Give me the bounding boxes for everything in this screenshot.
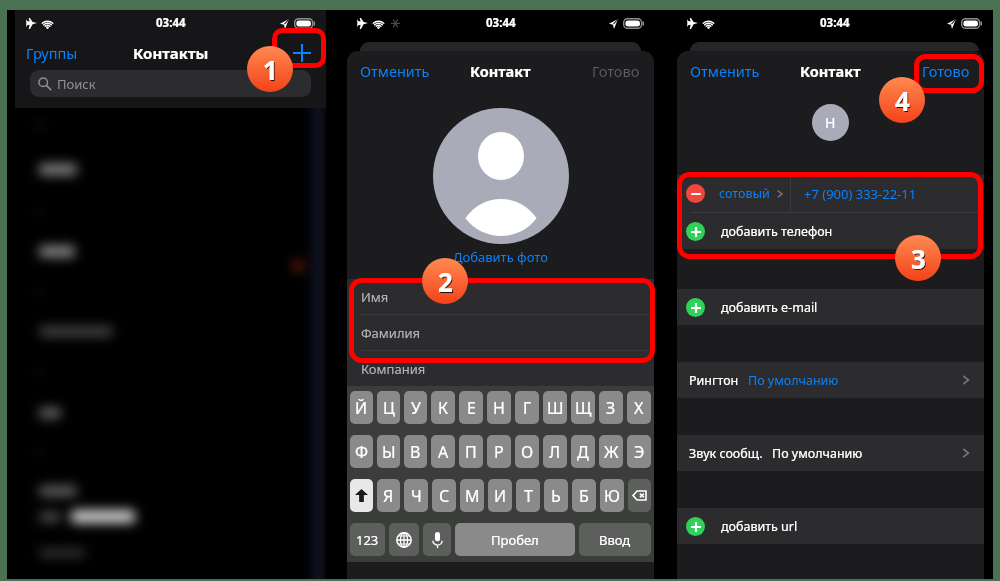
button[interactable]: Ж [599, 435, 623, 468]
button[interactable]: Ц [377, 391, 400, 424]
staticText: добавить e-mail [721, 299, 818, 316]
button[interactable]: Готово [592, 61, 640, 81]
staticText: Д [577, 441, 589, 463]
staticText: Отменить [360, 61, 430, 81]
button[interactable]: Х [627, 391, 651, 424]
staticText: М [465, 485, 480, 507]
staticText: Л [549, 441, 561, 463]
button[interactable]: Т [516, 479, 540, 512]
button[interactable]: И [488, 479, 512, 512]
button[interactable]: Shift [350, 479, 373, 512]
staticText: Ю [604, 485, 620, 507]
staticText: 123 [356, 531, 379, 549]
staticText: Ж [604, 441, 619, 463]
staticText: К [438, 397, 449, 419]
staticText: У [411, 397, 421, 419]
button[interactable]: Поиск [30, 70, 311, 97]
button[interactable]: О [515, 435, 539, 468]
other: Add [686, 517, 705, 536]
button[interactable]: Э [627, 435, 651, 468]
staticText: Ф [355, 441, 369, 463]
button[interactable]: Д [571, 435, 595, 468]
staticText: +7 (900) 333-22-11 [804, 185, 917, 203]
button[interactable]: Готово [922, 61, 970, 81]
staticText: 1 [263, 52, 278, 87]
button[interactable]: В [404, 435, 427, 468]
button[interactable]: Р [487, 435, 511, 468]
staticText: В [410, 441, 421, 463]
staticText: Контакт [800, 61, 861, 81]
button[interactable]: Группы [26, 43, 78, 63]
button[interactable]: Щ [571, 391, 595, 424]
button[interactable]: Ф [350, 435, 373, 468]
staticText: добавить телефон [721, 223, 833, 240]
staticText: Ц [383, 397, 395, 419]
button[interactable]: Г [515, 391, 539, 424]
button[interactable]: Л [543, 435, 567, 468]
button[interactable]: Ввод [579, 523, 651, 556]
staticText: добавить url [721, 518, 798, 535]
button[interactable]: Add [677, 213, 984, 249]
staticText: Контакты [133, 43, 209, 63]
staticText: И [494, 485, 507, 507]
button[interactable]: Е [459, 391, 483, 424]
button[interactable]: П [459, 435, 483, 468]
staticText: Добавить фото [453, 248, 548, 266]
staticText: Поиск [57, 75, 96, 93]
staticText: По умолчанию [748, 372, 839, 389]
button[interactable]: Пробел [455, 523, 575, 556]
button[interactable]: 123 [350, 523, 385, 556]
button[interactable]: Й [350, 391, 373, 424]
button[interactable]: Change keyboard [389, 523, 419, 556]
staticText: сотовый [719, 185, 770, 202]
button[interactable]: Dictate [423, 523, 451, 556]
staticText: Ш [547, 397, 564, 419]
staticText: Э [634, 441, 645, 463]
button[interactable]: М [460, 479, 484, 512]
staticText: Б [579, 485, 589, 507]
button[interactable]: Ы [377, 435, 400, 468]
staticText: Группы [26, 43, 78, 63]
button[interactable]: Add [677, 508, 984, 544]
button[interactable]: Отменить [690, 61, 760, 81]
button[interactable]: Backspace [628, 479, 651, 512]
staticText: Ввод [599, 531, 631, 549]
other: Add [686, 298, 705, 317]
button[interactable]: Имя [347, 279, 654, 314]
button[interactable]: Звук сообщ. [677, 435, 984, 471]
button[interactable]: Н [487, 391, 511, 424]
button[interactable]: Ш [543, 391, 567, 424]
staticText: Отменить [690, 61, 760, 81]
button[interactable]: Добавить фото [347, 247, 654, 267]
staticText: Й [355, 397, 368, 419]
staticText: Рингтон [689, 372, 739, 389]
staticText: По умолчанию [772, 445, 863, 462]
staticText: Г [523, 397, 532, 419]
button[interactable]: Add [677, 289, 984, 325]
button[interactable]: З [599, 391, 623, 424]
button[interactable]: С [432, 479, 456, 512]
button[interactable]: Ь [544, 479, 568, 512]
staticText: 4 [896, 84, 911, 119]
button[interactable]: Рингтон [677, 362, 984, 398]
button[interactable]: Remove [686, 184, 705, 203]
staticText: А [438, 441, 449, 463]
button[interactable]: К [431, 391, 455, 424]
button[interactable]: Remove [677, 175, 984, 212]
button[interactable]: А [431, 435, 455, 468]
button[interactable]: Фамилия [347, 315, 654, 350]
button[interactable]: Отменить [360, 61, 430, 81]
button[interactable]: Б [572, 479, 596, 512]
staticText: Контакт [470, 61, 531, 81]
staticText: Е [467, 397, 476, 419]
staticText: Имя [361, 288, 389, 306]
button[interactable]: У [404, 391, 427, 424]
button[interactable]: Add contact [288, 39, 316, 67]
staticText: Готово [922, 61, 970, 81]
button[interactable]: Я [377, 479, 400, 512]
staticText: Щ [575, 397, 592, 419]
button[interactable]: Компания [347, 351, 654, 386]
button[interactable]: Ю [600, 479, 624, 512]
staticText: 4 [895, 83, 910, 118]
button[interactable]: Ч [404, 479, 428, 512]
